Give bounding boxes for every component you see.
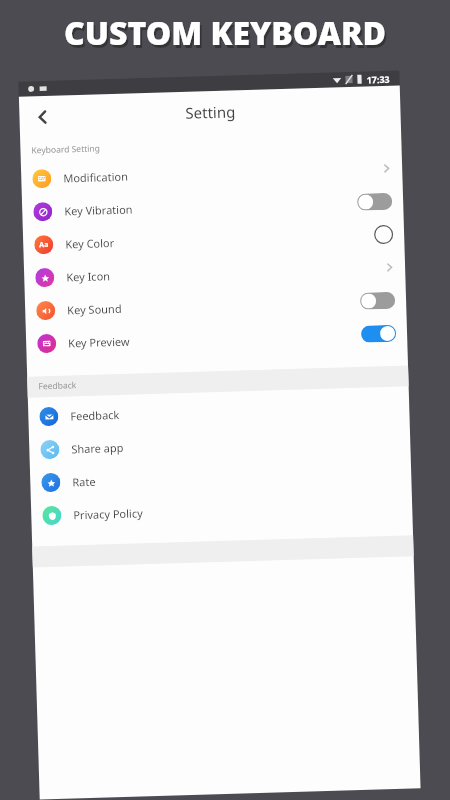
button[interactable]: Choose key color bbox=[374, 225, 393, 244]
staticText: Key Icon bbox=[66, 268, 110, 284]
staticText: Key Preview bbox=[68, 334, 130, 350]
button[interactable]: Share app bbox=[29, 422, 411, 467]
button[interactable]: Key Preview bbox=[26, 316, 407, 361]
staticText: 17:33 bbox=[366, 73, 391, 85]
staticText: CUSTOM KEYBOARD bbox=[66, 14, 389, 58]
staticText: Key Sound bbox=[67, 301, 122, 317]
button[interactable]: Modification bbox=[21, 151, 403, 196]
button[interactable]: Key Sound toggle bbox=[360, 292, 395, 310]
staticText: Rate bbox=[72, 474, 96, 489]
staticText: Keyboard Setting bbox=[31, 142, 101, 156]
button[interactable]: Key Icon bbox=[24, 250, 406, 295]
staticText: Feedback bbox=[38, 379, 77, 392]
button[interactable]: Aa bbox=[23, 217, 405, 262]
button[interactable]: Rate bbox=[30, 455, 412, 500]
staticText: Share app bbox=[71, 440, 124, 456]
button[interactable]: Key Vibration bbox=[22, 184, 404, 229]
staticText: Feedback bbox=[70, 407, 119, 423]
button[interactable]: Privacy Policy bbox=[31, 488, 413, 533]
staticText: Key Vibration bbox=[64, 201, 133, 218]
button[interactable]: Key Preview toggle bbox=[361, 325, 396, 343]
staticText: Setting bbox=[185, 101, 236, 123]
staticText: CUSTOM KEYBOARD bbox=[64, 11, 387, 55]
staticText: Modification bbox=[63, 169, 128, 185]
button[interactable]: Key Sound bbox=[25, 283, 407, 328]
staticText: Privacy Policy bbox=[73, 505, 143, 522]
staticText: Key Color bbox=[65, 235, 114, 251]
button[interactable]: Feedback bbox=[28, 389, 410, 434]
button[interactable]: Key Vibration toggle bbox=[357, 193, 392, 211]
button[interactable]: Back bbox=[26, 101, 59, 133]
staticText: Aa bbox=[39, 240, 49, 250]
